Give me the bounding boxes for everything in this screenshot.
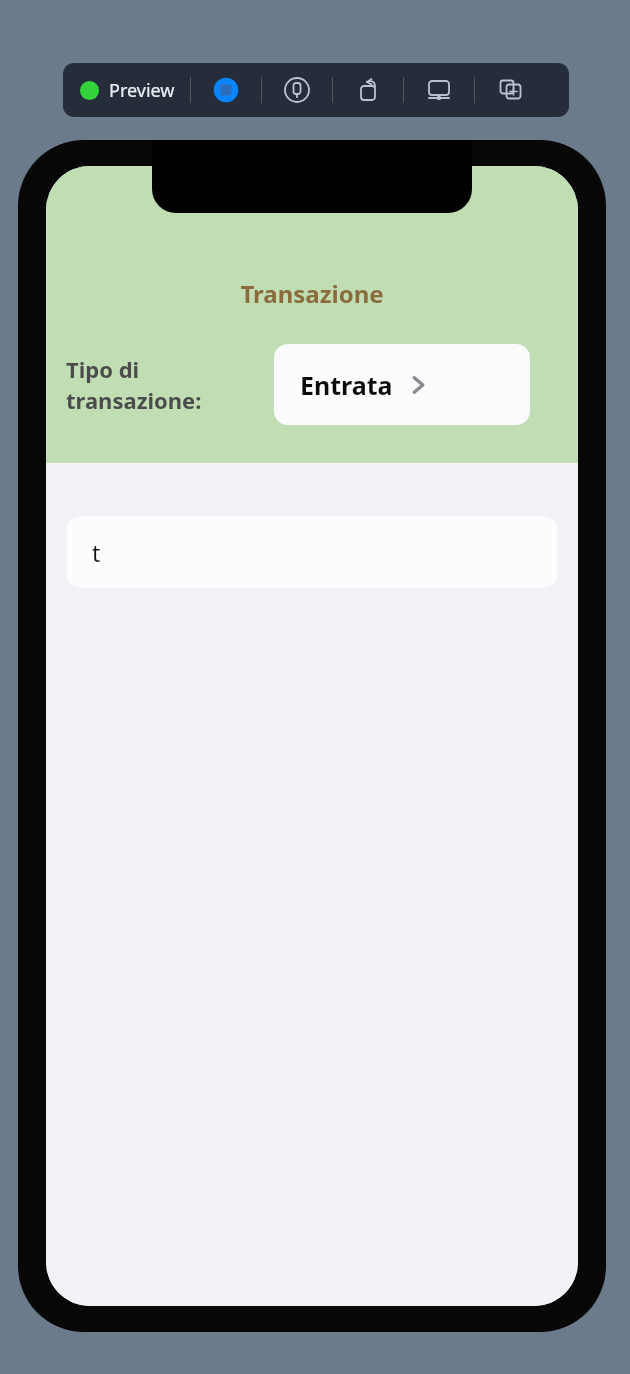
button[interactable]: Restart preview xyxy=(333,63,403,117)
staticText: Entrata xyxy=(300,368,393,402)
staticText: Preview xyxy=(109,78,175,103)
staticText: Tipo di transazione: xyxy=(66,354,262,416)
button[interactable]: Entrata xyxy=(274,344,530,425)
button[interactable]: New preview xyxy=(475,63,545,117)
staticText: Transazione xyxy=(46,277,578,310)
button[interactable]: Inspect xyxy=(262,63,332,117)
button[interactable]: Run on device xyxy=(404,63,474,117)
button[interactable]: Select element xyxy=(191,63,261,117)
button[interactable]: Preview xyxy=(63,63,190,117)
staticText: t xyxy=(92,537,101,568)
button[interactable]: t xyxy=(67,516,557,588)
